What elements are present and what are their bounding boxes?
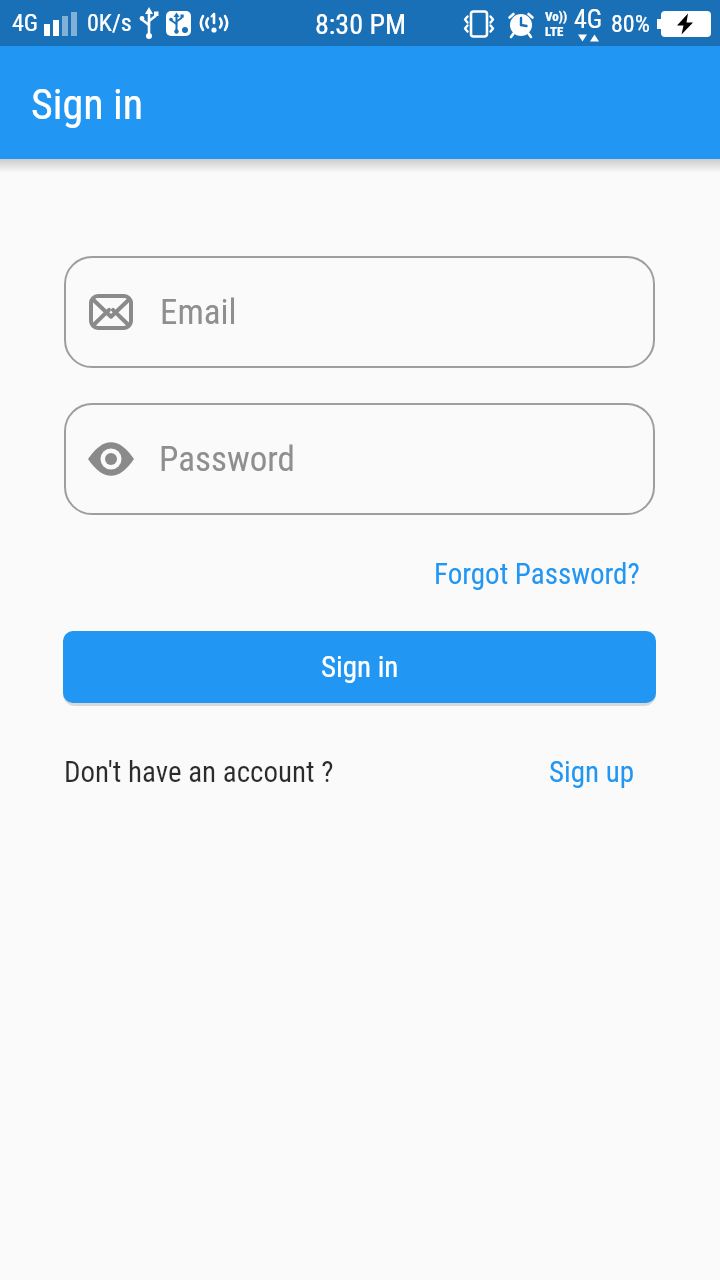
staticText: Sign up — [549, 755, 635, 789]
staticText: 4G — [574, 4, 603, 34]
button[interactable]: Password — [64, 403, 655, 515]
button[interactable]: Sign in — [63, 631, 656, 703]
staticText: Sign in — [31, 80, 144, 129]
staticText: LTE — [545, 24, 564, 39]
staticText: Vo)) — [545, 9, 568, 24]
staticText: Sign in — [321, 650, 399, 684]
staticText: Forgot Password? — [434, 557, 640, 591]
button[interactable]: Email — [64, 256, 655, 368]
staticText: 8:30 PM — [315, 8, 407, 41]
staticText: Don't have an account ? — [64, 755, 334, 789]
staticText: 0K/s — [87, 9, 132, 37]
button[interactable]: Sign up — [549, 755, 635, 789]
staticText: 80% — [611, 10, 650, 38]
staticText: Email — [160, 292, 237, 333]
button[interactable]: Forgot Password? — [434, 557, 640, 591]
staticText: 4G — [12, 9, 39, 37]
staticText: Password — [159, 439, 295, 480]
